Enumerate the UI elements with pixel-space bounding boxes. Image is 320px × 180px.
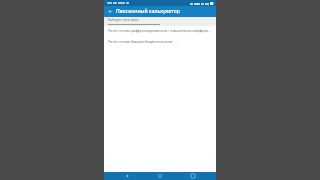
button[interactable]: Выберите категорию xyxy=(104,17,216,26)
staticText: Пенсионный калькулятор xyxy=(116,8,212,15)
button[interactable]: Расчёт пенсии базовый бюджетный взнос ..… xyxy=(108,40,212,44)
button[interactable]: Back xyxy=(104,6,116,17)
button[interactable]: Расчёт пенсии дифференцированный с повыш… xyxy=(108,29,212,33)
button[interactable]: Home xyxy=(150,172,170,180)
button[interactable]: Recent apps xyxy=(183,172,203,180)
button[interactable]: Back xyxy=(117,172,137,180)
staticText: Выберите категорию xyxy=(108,18,139,22)
